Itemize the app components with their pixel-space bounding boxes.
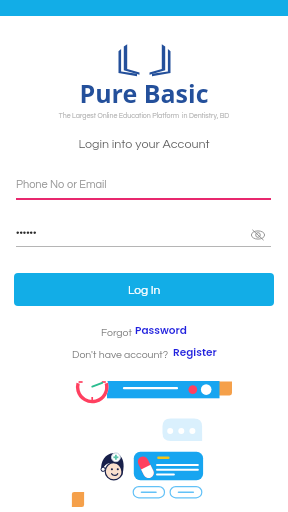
button[interactable]: Register (173, 345, 217, 360)
staticText: Forgot (101, 327, 135, 338)
button[interactable]: Show password (247, 224, 269, 246)
staticText: Register (173, 345, 217, 360)
button[interactable]: Log In (14, 273, 274, 306)
staticText: Phone No or Email (16, 179, 288, 190)
staticText: Login into your Account (0, 138, 288, 151)
button[interactable]: Password (135, 323, 187, 338)
staticText: Don't have account? (72, 349, 173, 360)
staticText: The Largest Online Education Platform in… (0, 112, 288, 119)
staticText: Pure Basic (0, 76, 288, 110)
staticText: Password (135, 323, 187, 338)
staticText: •••••• (16, 228, 288, 238)
staticText: Log In (128, 284, 161, 296)
